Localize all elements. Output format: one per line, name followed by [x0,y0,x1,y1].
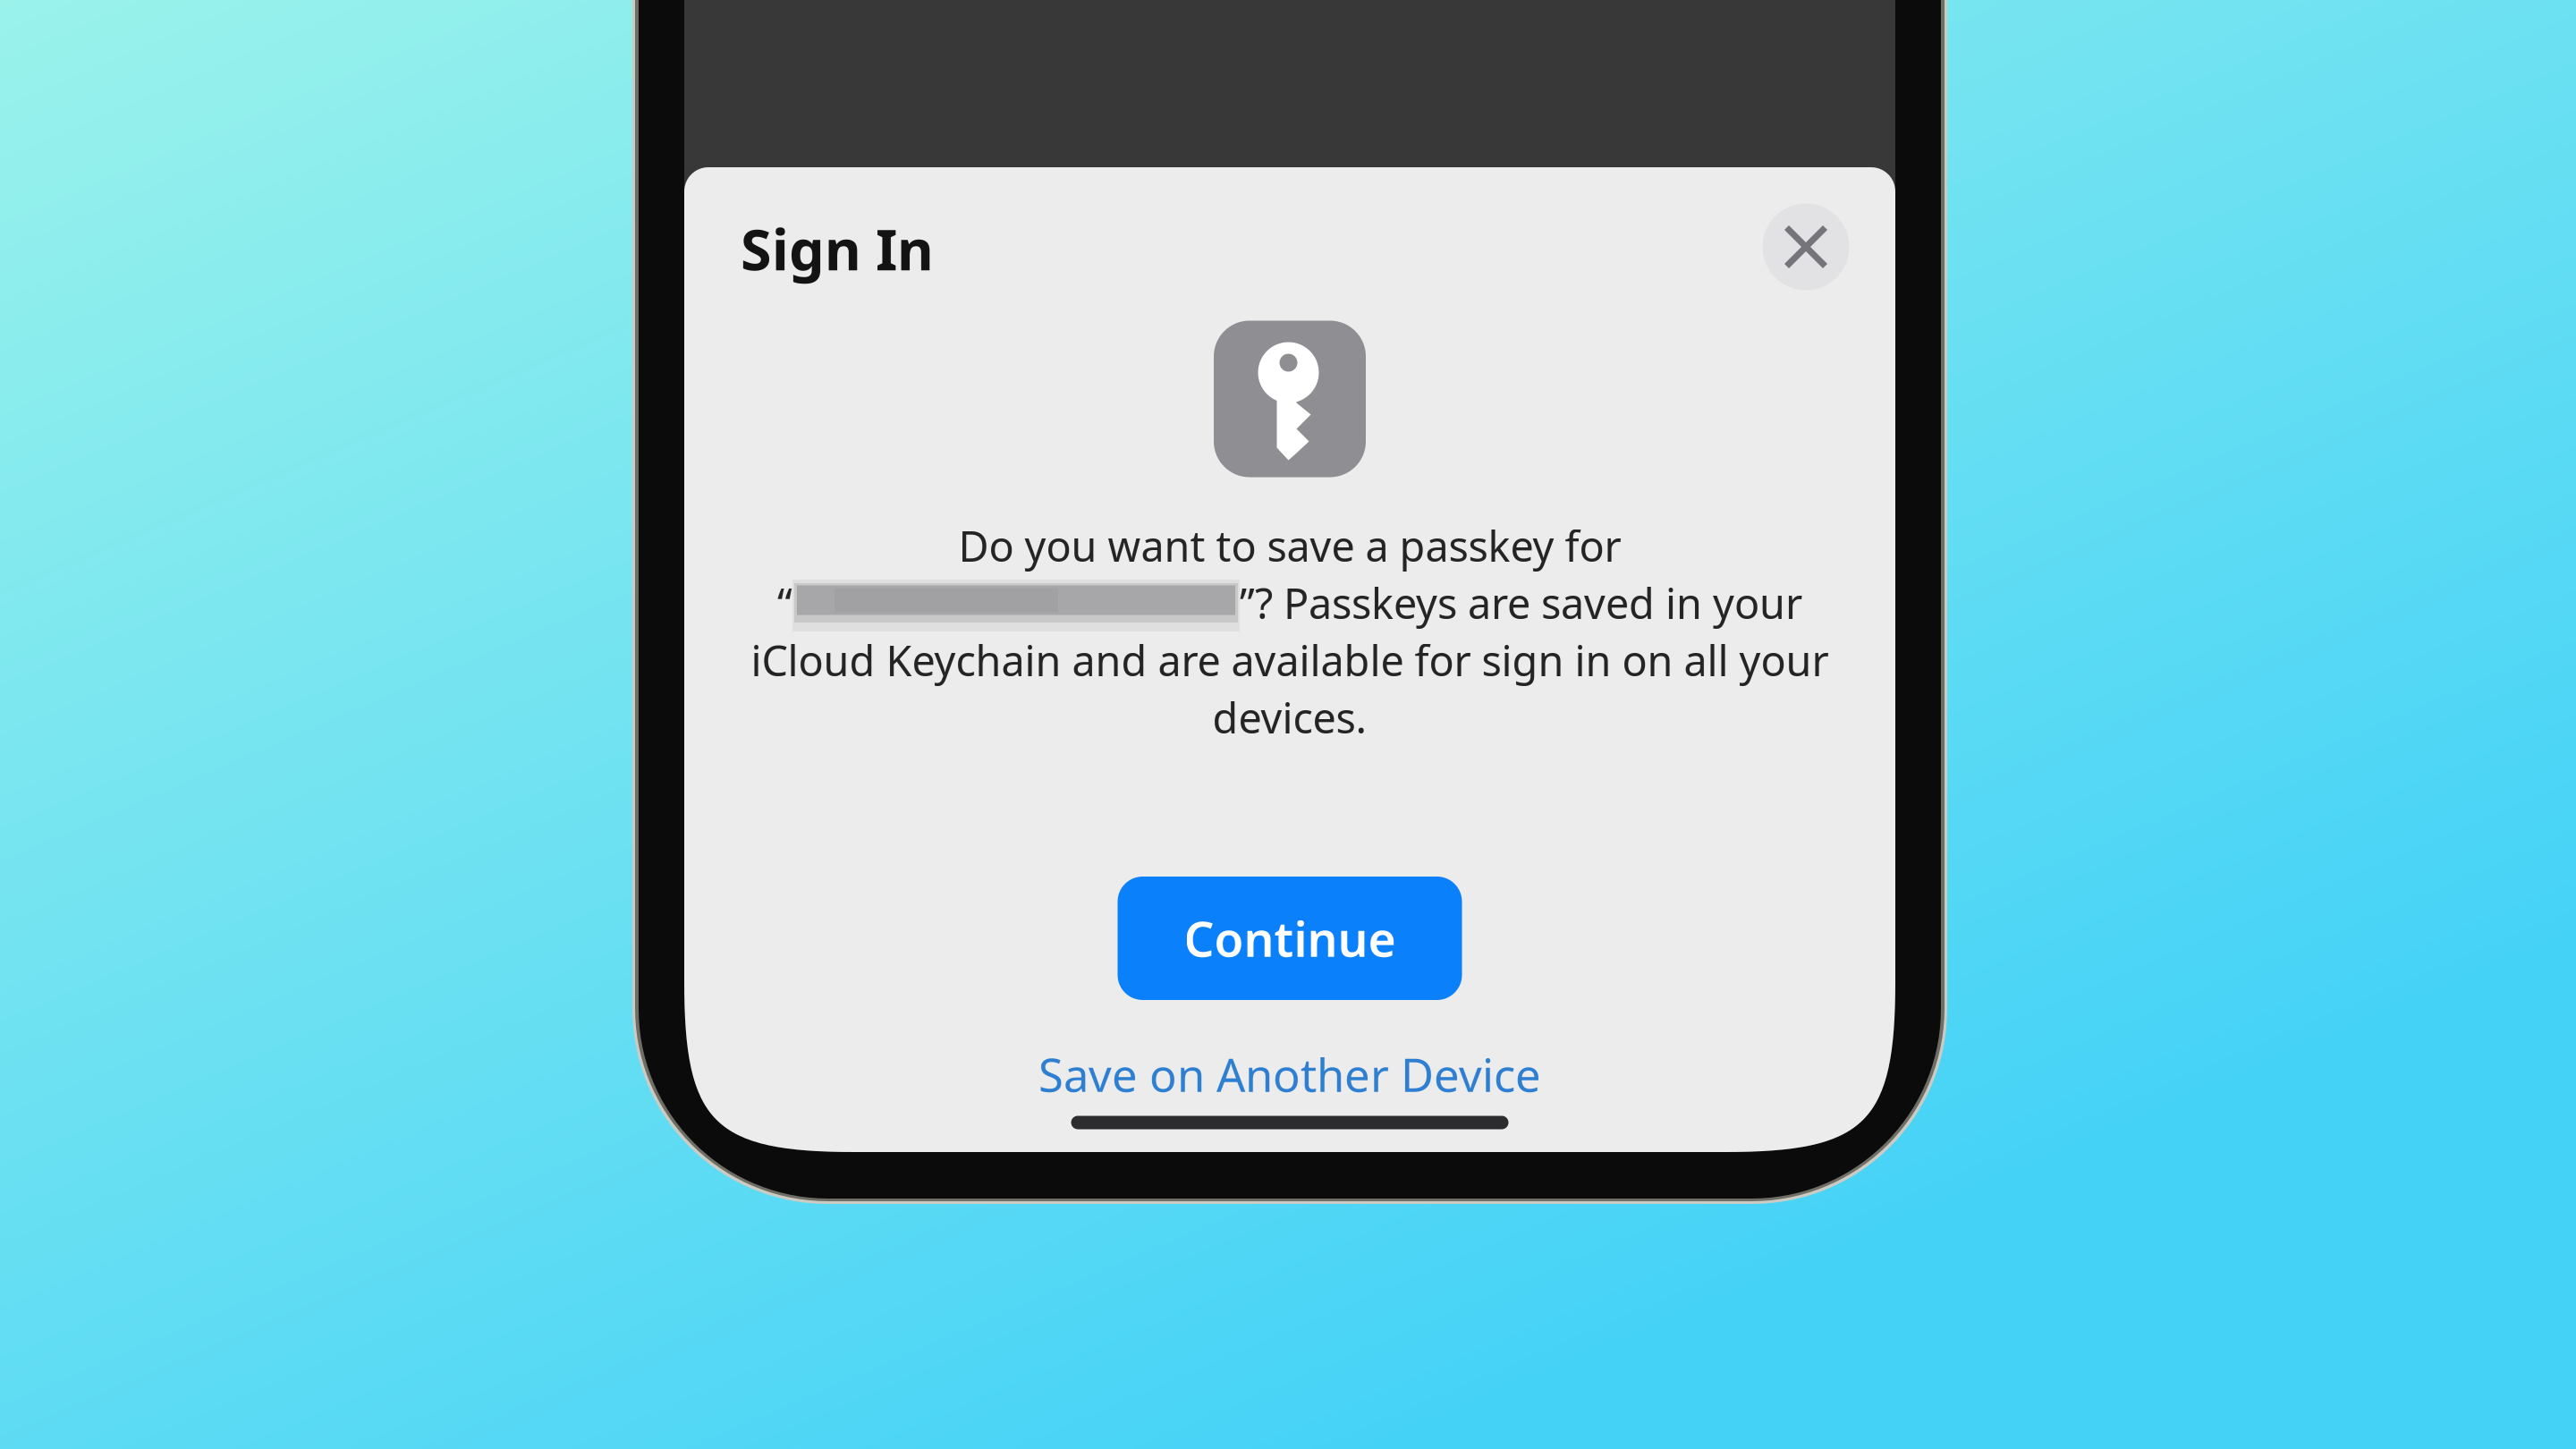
button[interactable]: Close [1763,203,1849,290]
button[interactable]: Continue [1118,877,1462,1000]
button[interactable]: Save on Another Device [1038,1044,1541,1104]
staticText: “ [777,575,792,631]
staticText: iCloud Keychain and are available for si… [751,632,1829,688]
staticText: Save on Another Device [1038,1044,1541,1104]
staticText: ”? Passkeys are saved in your [1240,575,1802,631]
staticText: Sign In [741,211,934,286]
staticText: Continue [1184,907,1396,970]
staticText: Do you want to save a passkey for [958,518,1621,573]
staticText: devices. [1212,690,1367,745]
